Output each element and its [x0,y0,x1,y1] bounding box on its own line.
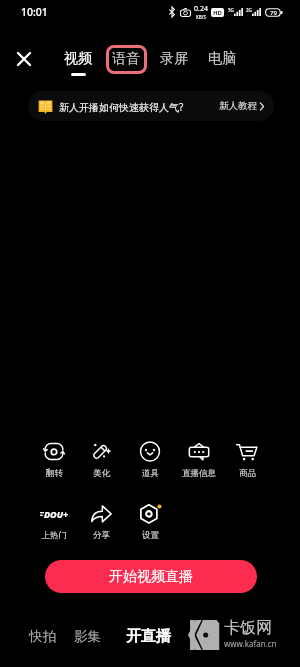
staticText: 电脑 [208,50,236,68]
button[interactable]: 道具 [126,441,174,479]
button[interactable]: 电脑 [202,40,242,78]
button[interactable]: Close [10,45,38,73]
staticText: 开直播 [126,627,171,646]
staticText: 10:01 [21,5,48,19]
button[interactable]: 开直播 [126,624,171,648]
staticText: 5G [228,7,234,13]
staticText: www.kafan.cn [224,638,277,649]
button[interactable]: 直播信息 [175,441,223,479]
staticText: 新人开播如何快速获得人气? [59,100,184,114]
button[interactable]: 设置 [126,503,174,541]
button[interactable]: 美化 [77,441,125,479]
staticText: KB/S [196,14,206,20]
staticText: 新人教程 [219,100,257,112]
button[interactable]: 语音 [106,40,146,78]
button[interactable]: 商品 [223,441,271,479]
button[interactable]: 录屏 [154,40,194,78]
staticText: 设置 [142,530,159,541]
button[interactable]: DOU+ [30,503,78,541]
staticText: 直播信息 [182,468,216,479]
button[interactable]: 翻转 [30,441,78,479]
staticText: 快拍 [29,628,56,645]
button[interactable]: 快拍 [29,624,56,648]
button[interactable]: 视频 [58,40,98,78]
staticText: 2G [246,7,252,13]
staticText: 开始视频直播 [109,568,193,586]
staticText: 卡饭网 [224,618,272,638]
staticText: 视频 [64,50,92,68]
staticText: 美化 [93,468,110,479]
staticText: 79 [270,9,277,17]
staticText: 影集 [74,628,101,645]
staticText: 商品 [239,468,256,479]
staticText: 分享 [93,530,110,541]
staticText: DOU+ [44,508,69,520]
button[interactable]: 新人开播如何快速获得人气? [28,91,274,121]
staticText: HD [213,9,222,17]
button[interactable]: 开始视频直播 [45,560,257,593]
staticText: 0.24 [194,4,208,14]
button[interactable]: 分享 [77,503,125,541]
staticText: 录屏 [160,50,188,68]
staticText: 道具 [142,468,159,479]
staticText: 翻转 [46,468,63,479]
staticText: 上热门 [41,530,67,541]
button[interactable]: 影集 [74,624,101,648]
staticText: 语音 [112,50,140,68]
